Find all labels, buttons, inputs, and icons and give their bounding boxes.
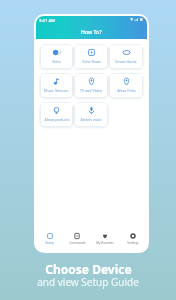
- staticText: and view Setup Guide: [37, 275, 139, 289]
- staticText: Setup: [45, 241, 54, 245]
- staticText: Commands: [69, 241, 86, 245]
- button[interactable]: TV and Video: [75, 74, 107, 97]
- staticText: Alexa products: [44, 117, 70, 122]
- button[interactable]: Alexa's voice: [75, 103, 107, 126]
- staticText: How To?: [81, 28, 102, 35]
- button[interactable]: Settings: [119, 231, 147, 247]
- button[interactable]: My Routines: [91, 231, 119, 247]
- staticText: My Routines: [96, 241, 114, 245]
- button[interactable]: Echo Show: [75, 45, 107, 68]
- staticText: 9:41 AM: [39, 18, 56, 24]
- staticText: Choose Device: [45, 261, 132, 277]
- staticText: TV and Video: [80, 88, 102, 93]
- staticText: Music Streami.: [44, 88, 69, 93]
- button[interactable]: Setup: [36, 231, 63, 247]
- staticText: Settings: [127, 241, 139, 245]
- button[interactable]: Alexa products: [41, 103, 72, 126]
- staticText: Alexa's voice: [80, 117, 102, 122]
- staticText: Echo Show: [82, 59, 101, 64]
- button[interactable]: Smart Home: [110, 45, 142, 68]
- staticText: Alexa Picks: [117, 88, 136, 93]
- button[interactable]: Music Streami.: [41, 74, 72, 97]
- staticText: Echo: [52, 59, 61, 64]
- button[interactable]: Echo: [41, 45, 72, 68]
- staticText: Smart Home: [115, 59, 137, 64]
- button[interactable]: Alexa Picks: [110, 74, 142, 97]
- button[interactable]: Commands: [63, 231, 91, 247]
